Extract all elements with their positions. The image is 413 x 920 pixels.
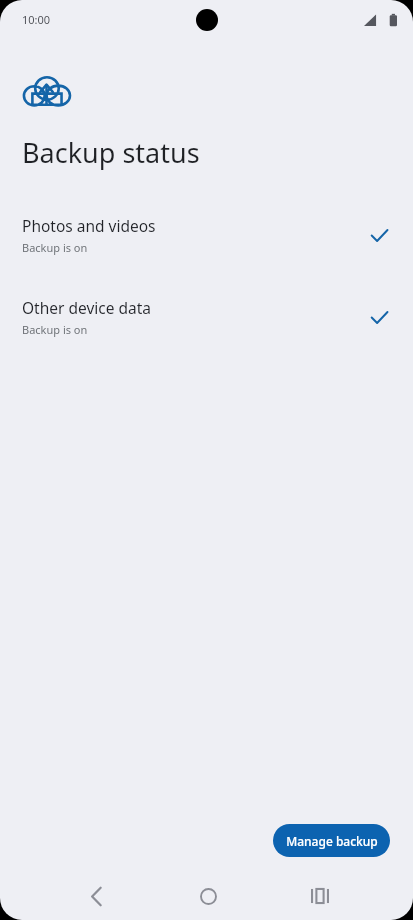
other: Backup is on: [367, 305, 391, 329]
button[interactable]: Recent apps: [298, 874, 342, 918]
other: Backup is on: [367, 223, 391, 247]
button[interactable]: Photos and videos: [0, 213, 413, 257]
staticText: 10:00: [22, 12, 51, 27]
staticText: Backup is on: [22, 240, 88, 255]
staticText: Photos and videos: [22, 215, 156, 236]
staticText: Manage backup: [286, 833, 378, 849]
staticText: Backup is on: [22, 322, 88, 337]
button[interactable]: Home: [186, 874, 230, 918]
button[interactable]: Back: [74, 874, 118, 918]
staticText: Other device data: [22, 297, 152, 318]
button[interactable]: Other device data: [0, 295, 413, 339]
button[interactable]: Manage backup: [273, 824, 390, 857]
staticText: Backup status: [22, 134, 200, 171]
